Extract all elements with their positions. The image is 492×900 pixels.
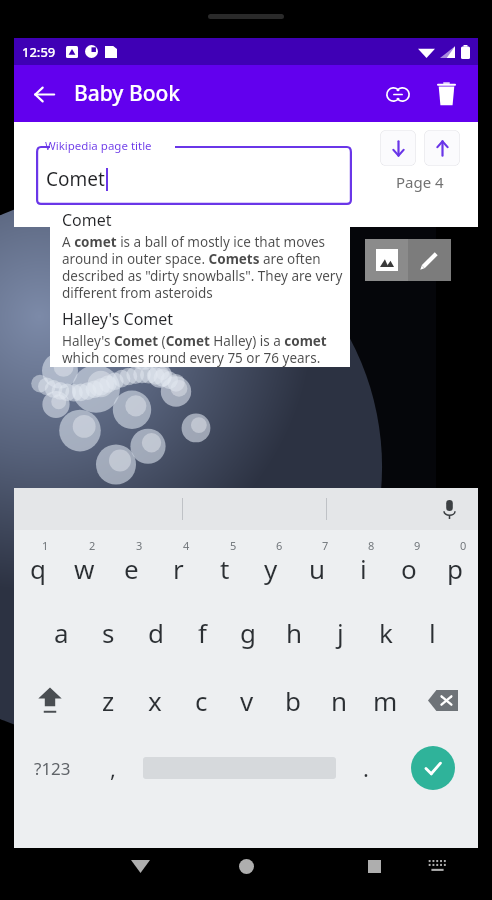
- button[interactable]: Hide keyboard: [110, 848, 170, 884]
- button[interactable]: Space: [134, 734, 344, 802]
- button[interactable]: l: [409, 598, 455, 666]
- staticText: z: [102, 683, 115, 718]
- staticText: 3: [136, 538, 143, 553]
- staticText: x: [148, 683, 162, 718]
- button[interactable]: Comet: [62, 209, 344, 302]
- staticText: i: [360, 551, 367, 586]
- button[interactable]: v: [224, 666, 270, 734]
- button[interactable]: Link: [376, 72, 420, 116]
- staticText: 2: [89, 538, 96, 553]
- staticText: n: [331, 683, 348, 718]
- button[interactable]: 3: [108, 530, 155, 598]
- button[interactable]: Enter: [387, 734, 478, 802]
- staticText: h: [286, 615, 303, 650]
- button[interactable]: d: [132, 598, 179, 666]
- button[interactable]: n: [316, 666, 362, 734]
- button[interactable]: 2: [61, 530, 108, 598]
- button[interactable]: f: [179, 598, 225, 666]
- staticText: b: [285, 683, 301, 718]
- staticText: v: [240, 683, 254, 718]
- button[interactable]: b: [270, 666, 316, 734]
- button[interactable]: Voice input: [434, 494, 464, 524]
- staticText: e: [124, 551, 139, 586]
- button[interactable]: Switch keyboard: [412, 848, 462, 884]
- staticText: k: [379, 615, 393, 650]
- staticText: o: [401, 551, 417, 586]
- staticText: .: [363, 753, 369, 783]
- button[interactable]: Next page: [380, 130, 416, 166]
- button[interactable]: Previous page: [424, 130, 460, 166]
- button[interactable]: z: [85, 666, 132, 734]
- button[interactable]: Delete: [424, 72, 468, 116]
- button[interactable]: Halley's Comet: [62, 308, 344, 367]
- staticText: 5: [230, 538, 237, 553]
- button[interactable]: a: [38, 598, 85, 666]
- staticText: y: [264, 551, 278, 586]
- button[interactable]: 0: [432, 530, 478, 598]
- staticText: r: [173, 551, 184, 586]
- button[interactable]: 5: [202, 530, 248, 598]
- staticText: t: [220, 551, 230, 586]
- staticText: ,: [110, 753, 116, 783]
- button[interactable]: Back: [22, 72, 66, 116]
- staticText: 12:59: [22, 43, 56, 61]
- staticText: c: [195, 683, 208, 718]
- button[interactable]: g: [225, 598, 271, 666]
- staticText: 7: [322, 538, 329, 553]
- button[interactable]: 7: [294, 530, 340, 598]
- staticText: 9: [414, 538, 421, 553]
- button[interactable]: 8: [340, 530, 386, 598]
- staticText: Halley's Comet: [62, 308, 174, 330]
- button[interactable]: 4: [155, 530, 202, 598]
- staticText: Wikipedia page title: [45, 138, 152, 154]
- staticText: A comet is a ball of mostly ice that mov…: [62, 233, 344, 302]
- staticText: 0: [460, 538, 467, 553]
- button[interactable]: ?123: [14, 734, 91, 802]
- button[interactable]: .: [344, 734, 387, 802]
- staticText: l: [429, 615, 436, 650]
- staticText: d: [148, 615, 164, 650]
- staticText: 1: [42, 538, 49, 553]
- button[interactable]: 9: [386, 530, 432, 598]
- button[interactable]: Shift: [14, 666, 85, 734]
- button[interactable]: Recent apps: [344, 848, 404, 884]
- button[interactable]: ,: [91, 734, 134, 802]
- button[interactable]: c: [178, 666, 224, 734]
- button[interactable]: j: [317, 598, 363, 666]
- button[interactable]: Home: [216, 848, 276, 884]
- staticText: w: [74, 551, 95, 586]
- button[interactable]: 6: [248, 530, 294, 598]
- button[interactable]: Backspace: [408, 666, 478, 734]
- button[interactable]: x: [132, 666, 178, 734]
- staticText: m: [373, 683, 398, 718]
- button[interactable]: m: [362, 666, 408, 734]
- staticText: g: [240, 615, 256, 650]
- staticText: a: [54, 615, 69, 650]
- staticText: f: [198, 615, 207, 650]
- staticText: Halley's Comet (Comet Halley) is a comet…: [62, 332, 344, 367]
- button[interactable]: k: [363, 598, 409, 666]
- button[interactable]: Edit caption: [408, 239, 451, 281]
- staticText: 6: [276, 538, 283, 553]
- staticText: q: [30, 551, 46, 586]
- staticText: Comet: [46, 166, 105, 192]
- button[interactable]: s: [85, 598, 132, 666]
- staticText: s: [102, 615, 115, 650]
- staticText: Comet: [62, 209, 112, 231]
- staticText: Page 4: [396, 172, 444, 192]
- staticText: 4: [183, 538, 190, 553]
- button[interactable]: Pick image: [365, 239, 408, 281]
- staticText: 8: [368, 538, 375, 553]
- button[interactable]: 1: [14, 530, 61, 598]
- staticText: j: [337, 615, 344, 650]
- button[interactable]: h: [271, 598, 317, 666]
- staticText: p: [447, 551, 463, 586]
- staticText: u: [309, 551, 326, 586]
- staticText: Baby Book: [74, 79, 181, 108]
- staticText: ?123: [34, 757, 71, 780]
